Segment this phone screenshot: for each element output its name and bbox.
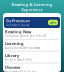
staticText: Listening bbox=[5, 41, 24, 46]
staticText: Start bbox=[50, 21, 56, 24]
staticText: Experience bbox=[21, 7, 42, 12]
staticText: Reading Now bbox=[5, 29, 31, 34]
staticText: Unlimited books bbox=[6, 23, 29, 27]
staticText: All your saved titles bbox=[5, 58, 32, 61]
staticText: Discover bbox=[5, 65, 21, 70]
staticText: Go Premium bbox=[6, 18, 30, 23]
staticText: Continue where you left off bbox=[5, 34, 46, 38]
staticText: Library bbox=[5, 53, 19, 58]
staticText: Reading & Listening bbox=[11, 2, 52, 7]
staticText: Audiobooks and podcasts bbox=[5, 46, 40, 50]
staticText: Recommended for you bbox=[5, 70, 37, 72]
